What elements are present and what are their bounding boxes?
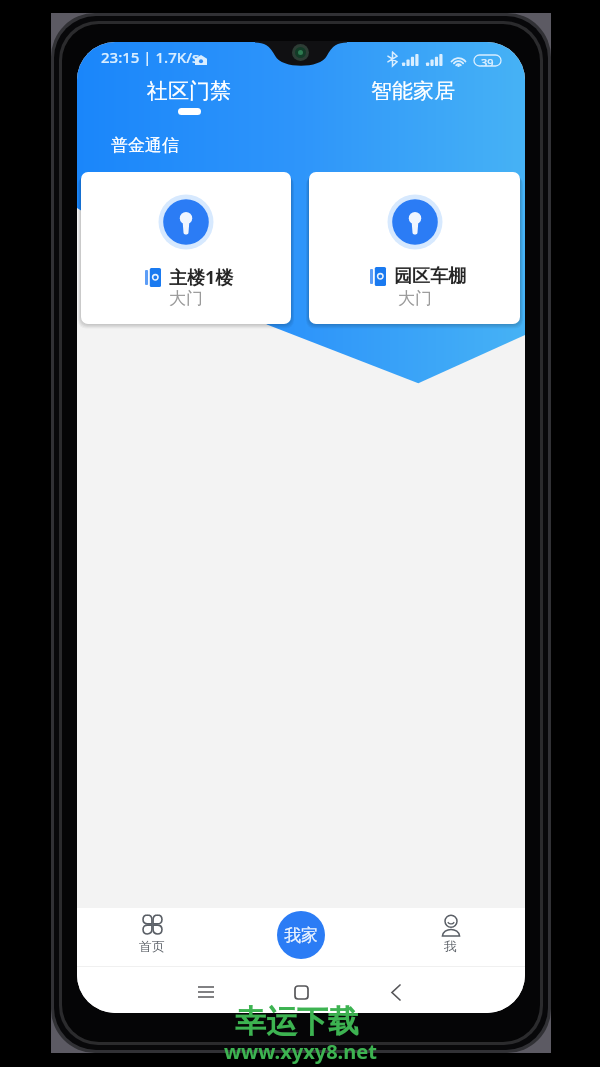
staticText: 39 [481, 55, 494, 66]
staticText: 首页 [139, 938, 165, 954]
staticText: 社区门禁 [147, 78, 231, 104]
staticText: 幸运下载 [235, 1002, 359, 1041]
button[interactable]: Back [381, 977, 411, 1007]
staticText: 普金通信 [111, 135, 179, 156]
button[interactable]: Home [286, 977, 316, 1007]
staticText: 园区车棚 [394, 265, 466, 288]
button[interactable]: Recent apps [191, 977, 221, 1007]
button[interactable]: 我家 [277, 911, 325, 959]
staticText: 我家 [284, 925, 318, 946]
button[interactable]: 智能家居 [301, 74, 525, 122]
staticText: 我 [444, 938, 457, 954]
button[interactable]: 首页 [77, 908, 227, 966]
button[interactable]: 主楼1楼 [81, 172, 291, 324]
button[interactable]: 我 [376, 908, 525, 966]
staticText: 大门 [398, 288, 432, 309]
staticText: 主楼1楼 [169, 265, 234, 290]
staticText: www.xyxy8.net [224, 1038, 377, 1065]
button[interactable]: 社区门禁 [77, 74, 301, 122]
staticText: 23:15 | 1.7K/s [101, 47, 200, 67]
button[interactable]: 园区车棚 [309, 172, 520, 324]
staticText: 智能家居 [371, 78, 455, 104]
staticText: 大门 [169, 288, 203, 309]
